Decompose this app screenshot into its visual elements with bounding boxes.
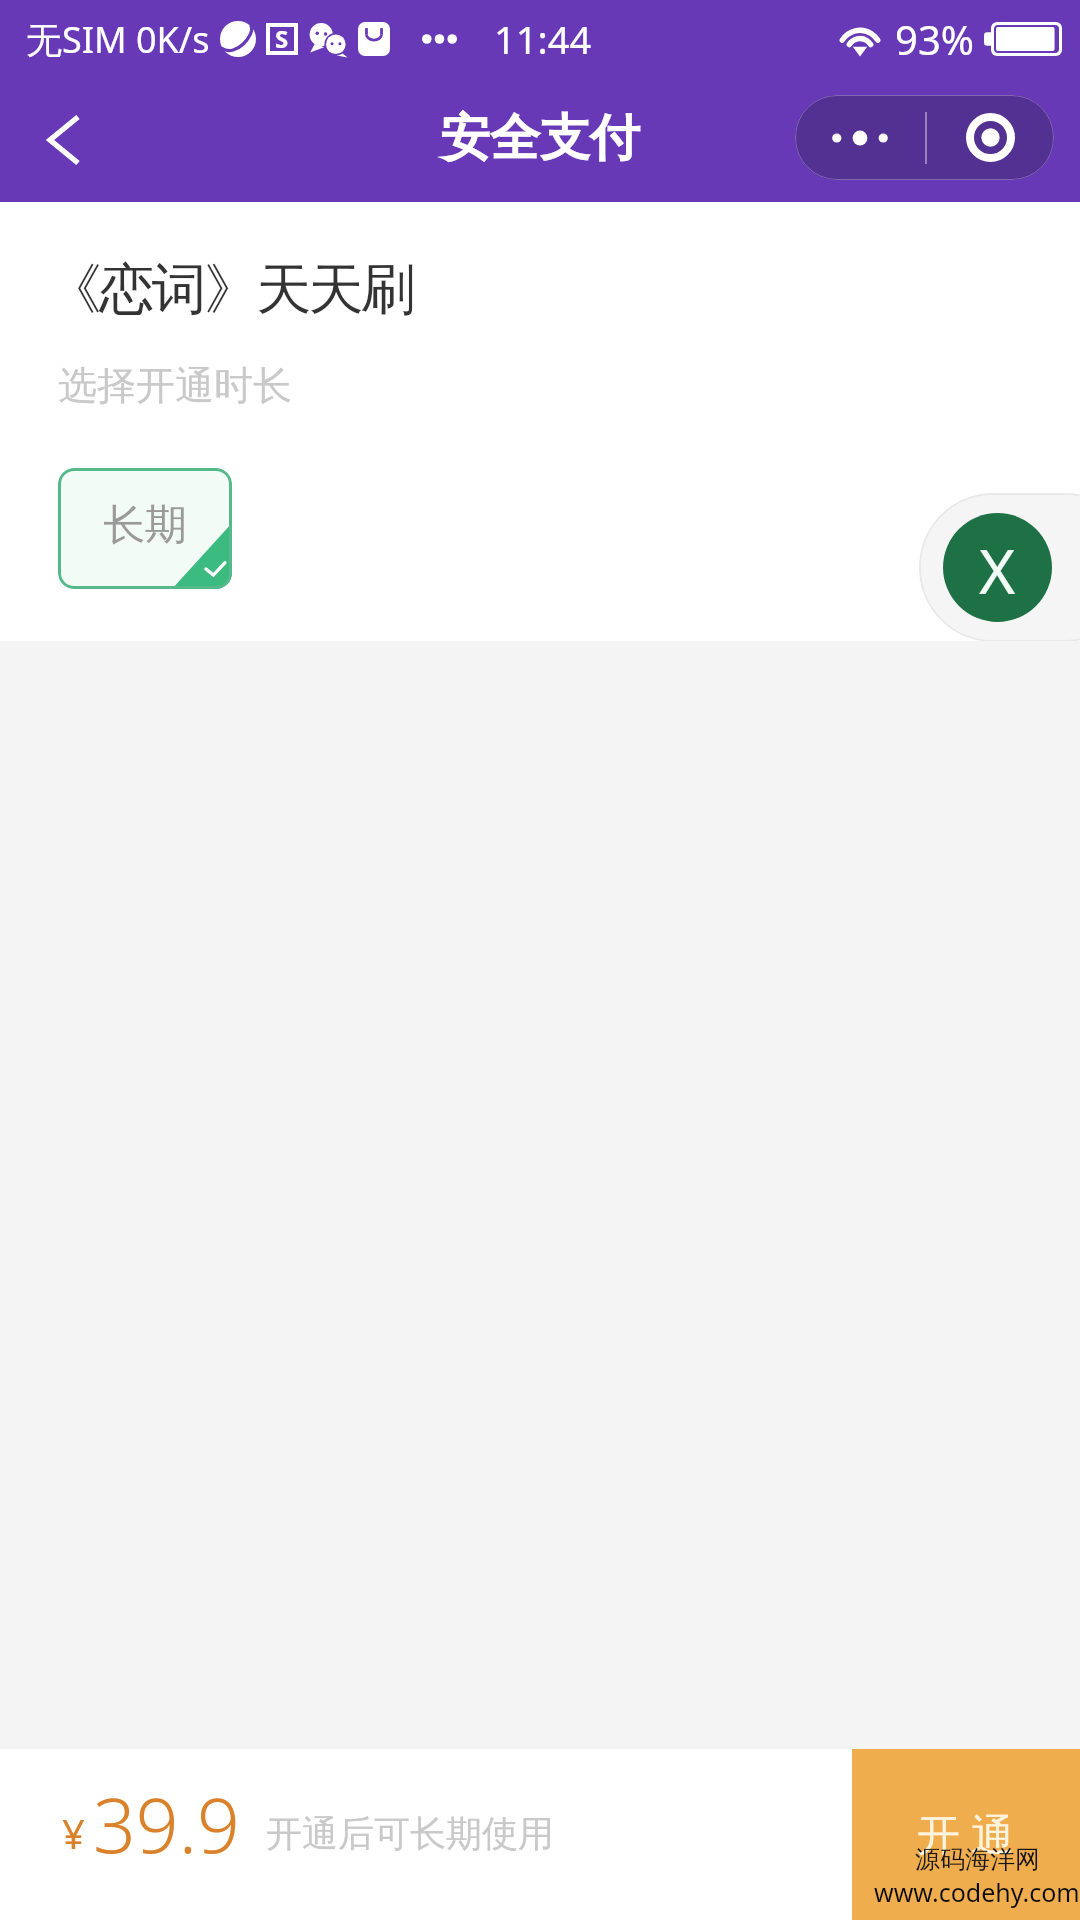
button[interactable]: 开 通 [852,1749,1080,1920]
staticText: 长期 [103,499,187,552]
staticText: 安全支付 [440,107,640,170]
staticText: ¥ [62,1806,85,1860]
staticText: www.codehy.com [874,1875,1080,1909]
button[interactable]: Customer service [919,493,1080,642]
staticText: 《恋词》天天刷 [47,255,414,324]
button[interactable]: More options [795,95,925,180]
button[interactable]: Back [16,92,112,188]
staticText: 39.9 [93,1773,240,1875]
button[interactable]: Close mini program [927,95,1054,180]
staticText: 源码海洋网 [915,1844,1040,1875]
staticText: 11:44 [494,13,592,65]
staticText: 开通后可长期使用 [266,1811,554,1856]
staticText: 选择开通时长 [58,361,292,410]
staticText: 93% [895,12,974,66]
staticText: S [275,22,289,54]
button[interactable]: 长期 [58,468,232,589]
staticText: X [979,528,1016,612]
staticText: 无SIM 0K/s [26,15,210,64]
staticText: 开 通 [917,1804,1015,1863]
